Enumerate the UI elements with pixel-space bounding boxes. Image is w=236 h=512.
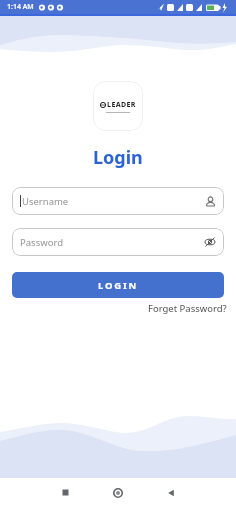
staticText: Login	[93, 145, 143, 170]
staticText: LEADER	[107, 100, 136, 110]
staticText: 1:14 AM	[7, 2, 34, 12]
button[interactable]	[156, 478, 186, 507]
button[interactable]: Forget Password?	[148, 302, 227, 315]
button[interactable]	[50, 478, 80, 507]
button[interactable]: LOGIN	[12, 272, 224, 298]
button[interactable]	[103, 478, 133, 507]
button[interactable]: Password	[12, 228, 224, 256]
staticText: Username	[22, 195, 69, 208]
button[interactable]: Username	[12, 187, 224, 215]
staticText: LOGIN	[98, 279, 138, 292]
staticText: Password	[20, 236, 63, 249]
